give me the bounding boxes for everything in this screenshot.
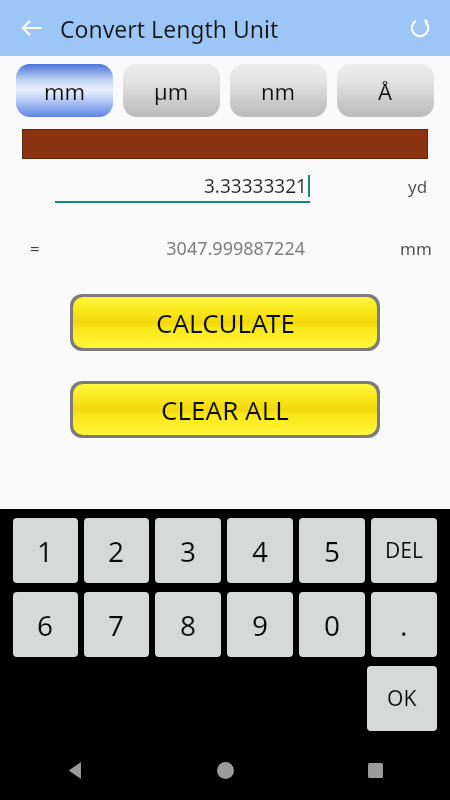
staticText: 3 <box>180 532 197 570</box>
button[interactable]: Back <box>10 6 54 50</box>
button[interactable]: OK <box>367 666 437 731</box>
staticText: . <box>400 606 408 644</box>
button[interactable]: CLEAR ALL <box>73 384 377 435</box>
button[interactable]: nm <box>230 64 327 117</box>
button[interactable]: 4 <box>227 518 293 583</box>
button[interactable]: Recent apps <box>300 740 450 800</box>
staticText: = <box>30 237 40 260</box>
button[interactable]: Refresh <box>398 6 442 50</box>
staticText: 2 <box>108 532 125 570</box>
staticText: CALCULATE <box>156 305 295 340</box>
staticText: OK <box>387 684 417 713</box>
staticText: mm <box>44 76 86 106</box>
staticText: 0 <box>324 606 341 644</box>
button[interactable]: 7 <box>84 592 149 657</box>
staticText: mm <box>400 237 432 260</box>
staticText: CLEAR ALL <box>161 392 289 427</box>
button[interactable]: mm <box>16 64 113 117</box>
button[interactable]: µm <box>123 64 220 117</box>
button[interactable]: Back <box>0 740 150 800</box>
button[interactable]: 2 <box>84 518 149 583</box>
button[interactable]: 3 <box>155 518 221 583</box>
staticText: 9 <box>252 606 269 644</box>
staticText: µm <box>154 76 189 106</box>
staticText: 8 <box>180 606 197 644</box>
staticText: Convert Length Unit <box>60 13 279 44</box>
button[interactable]: Å <box>337 64 434 117</box>
staticText: 4 <box>252 532 269 570</box>
staticText: Å <box>378 76 393 106</box>
staticText: nm <box>261 76 296 106</box>
button[interactable]: 9 <box>227 592 293 657</box>
staticText: 3047.999887224 <box>60 236 305 261</box>
button[interactable]: 1 <box>13 518 78 583</box>
staticText: DEL <box>385 536 424 565</box>
button[interactable]: DEL <box>371 518 437 583</box>
staticText: 1 <box>37 532 54 570</box>
button[interactable]: CALCULATE <box>73 297 377 348</box>
button[interactable]: 5 <box>299 518 365 583</box>
staticText: 5 <box>324 532 341 570</box>
button[interactable]: 8 <box>155 592 221 657</box>
button[interactable]: . <box>371 592 437 657</box>
staticText: 3.33333321 <box>204 173 307 199</box>
staticText: yd <box>408 175 428 198</box>
button[interactable]: 0 <box>299 592 365 657</box>
staticText: 6 <box>37 606 54 644</box>
button[interactable]: 6 <box>13 592 78 657</box>
button[interactable]: Home <box>150 740 300 800</box>
staticText: 7 <box>108 606 125 644</box>
